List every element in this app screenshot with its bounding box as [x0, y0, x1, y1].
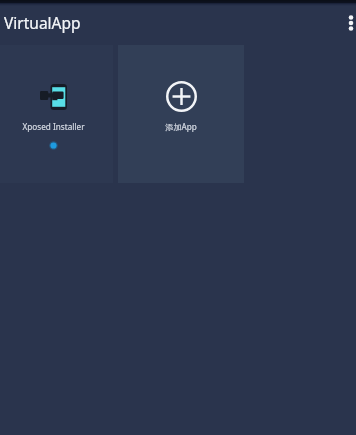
button[interactable]: More options	[336, 8, 356, 38]
button[interactable]: 添加App	[118, 45, 244, 183]
staticText: VirtualApp	[4, 12, 81, 33]
staticText: 添加App	[165, 121, 197, 132]
staticText: Xposed Installer	[22, 121, 85, 132]
button[interactable]: Xposed Installer	[0, 45, 113, 183]
